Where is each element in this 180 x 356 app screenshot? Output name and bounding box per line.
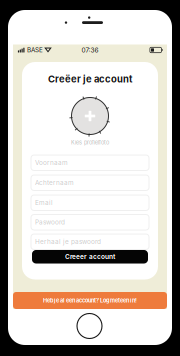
staticText: Creëer account <box>65 253 115 261</box>
staticText: Creëer je account <box>48 73 132 85</box>
button[interactable]: Paswoord <box>31 214 149 230</box>
staticText: Voornaam <box>35 159 68 167</box>
staticText: BASE <box>27 46 43 54</box>
staticText: Heb je al een account? Log meteen in! <box>43 297 137 304</box>
staticText: Herhaal je paswoord <box>35 238 101 246</box>
staticText: Kies profielfoto <box>71 139 109 146</box>
staticText: Achternaam <box>35 179 74 187</box>
button[interactable]: Achternaam <box>31 175 149 190</box>
button[interactable]: Email <box>31 195 149 210</box>
button[interactable]: Heb je al een account? Log meteen in! <box>13 292 167 309</box>
staticText: Paswoord <box>35 218 65 226</box>
button[interactable]: Creëer account <box>32 250 148 263</box>
staticText: Email <box>35 199 53 207</box>
staticText: 07:36 <box>81 46 98 54</box>
button[interactable]: Voornaam <box>31 155 149 170</box>
button[interactable]: Kies profielfoto <box>68 94 112 138</box>
button[interactable]: Herhaal je paswoord <box>31 234 149 249</box>
